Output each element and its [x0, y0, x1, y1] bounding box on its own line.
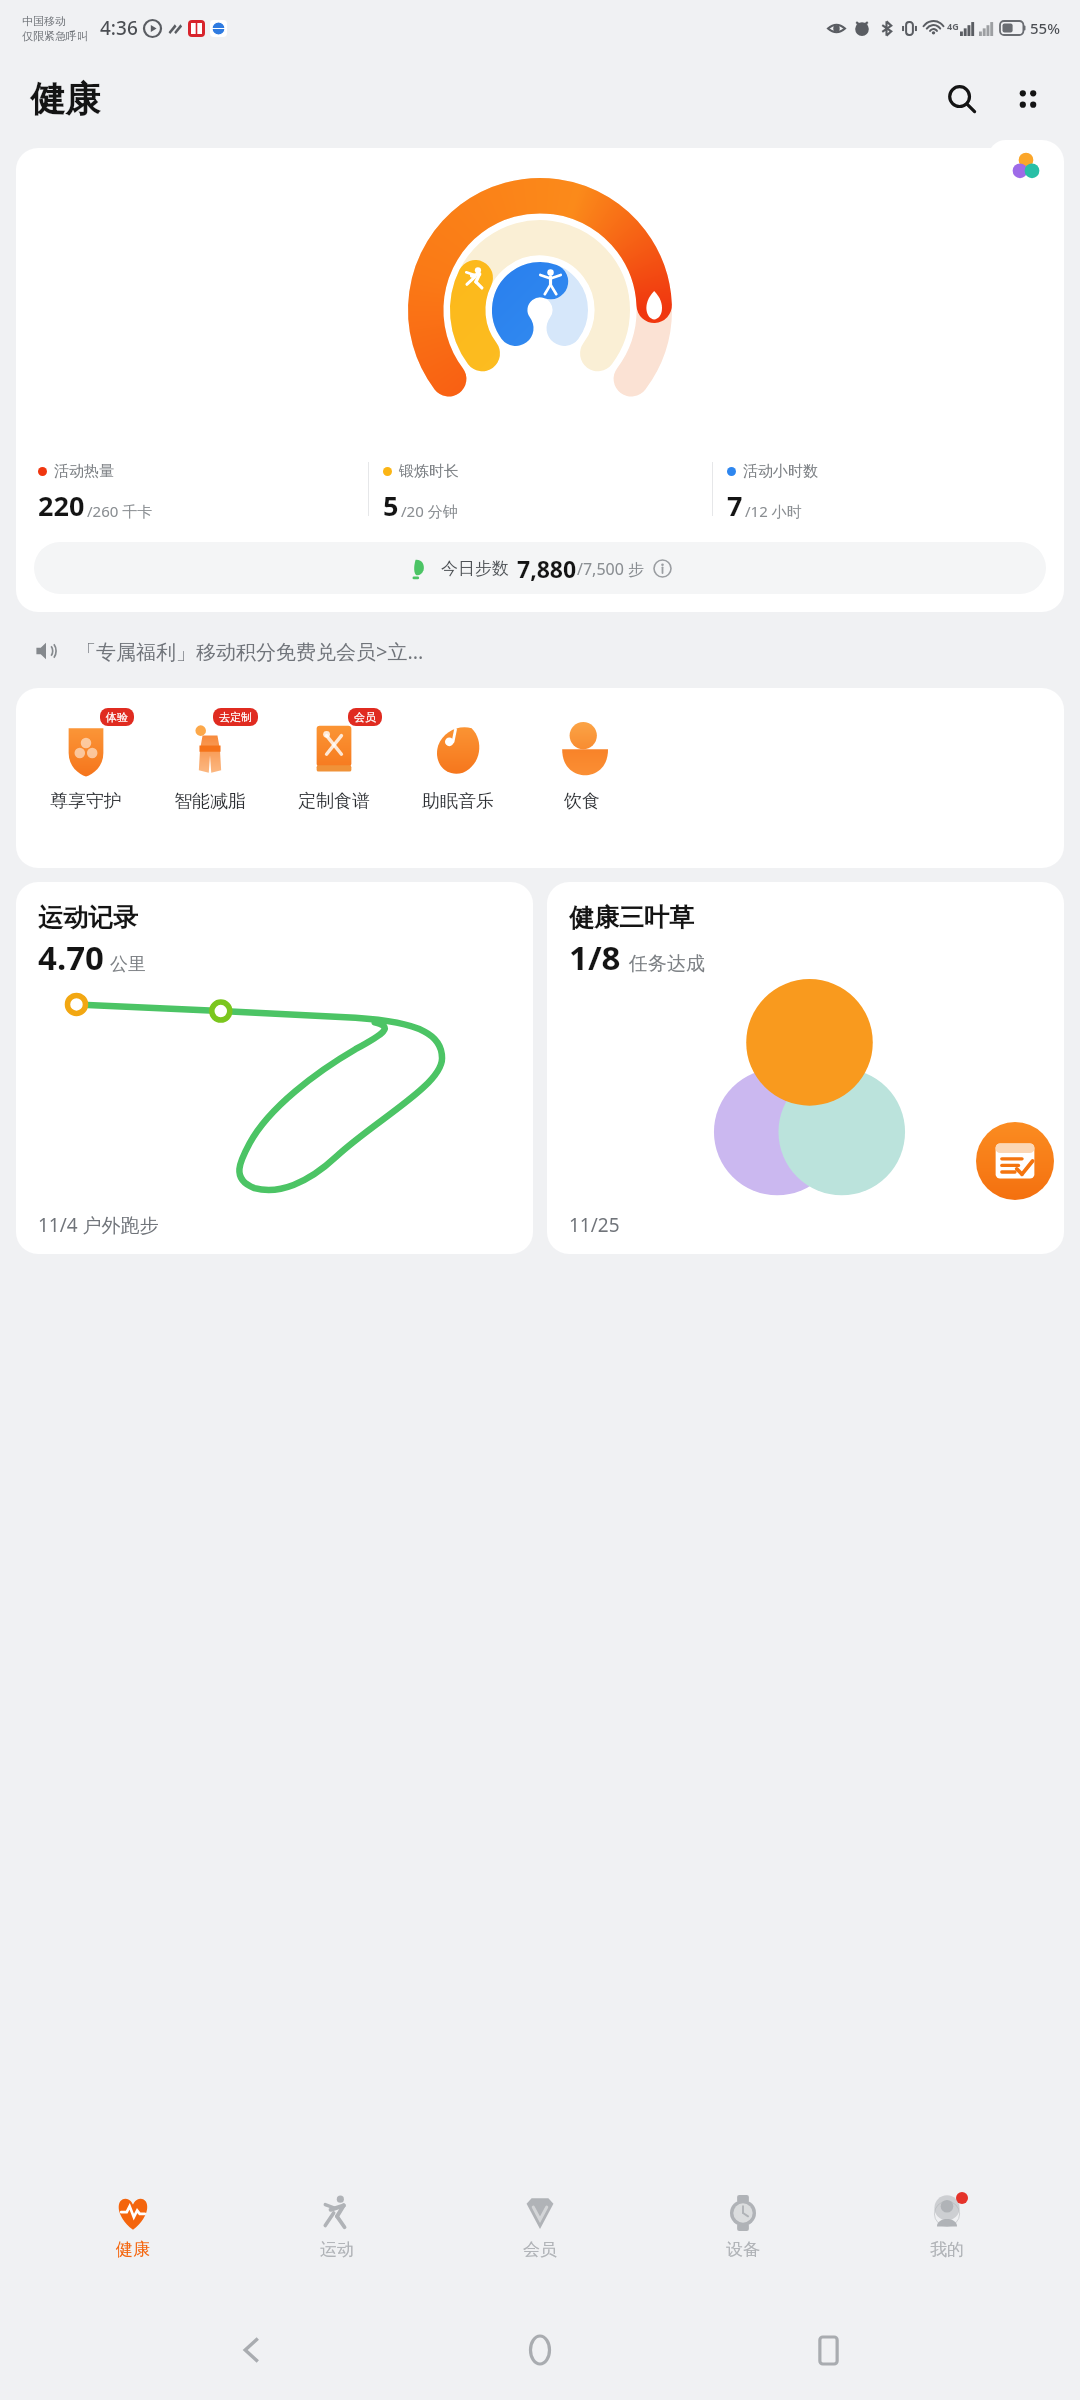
staticText: 5 [383, 487, 399, 524]
staticText: 体验 [106, 710, 128, 724]
button[interactable]: Back [218, 2315, 288, 2385]
staticText: 中国移动 [22, 14, 66, 28]
button[interactable]: 我的 [877, 2190, 1017, 2260]
staticText: 仅限紧急呼叫 [22, 29, 88, 43]
button[interactable]: Recents [793, 2315, 863, 2385]
staticText: 220 [38, 487, 85, 524]
button[interactable]: 助眠音乐 [410, 710, 506, 813]
staticText: 我的 [930, 2239, 964, 2260]
button[interactable]: 体验 [38, 710, 134, 813]
staticText: 4.70 [38, 935, 104, 980]
staticText: 助眠音乐 [422, 790, 494, 813]
button[interactable]: 设备 [673, 2190, 813, 2260]
button[interactable]: Health clover [988, 140, 1064, 192]
staticText: /20 分钟 [401, 501, 458, 521]
staticText: 7 [727, 487, 743, 524]
staticText: 会员 [523, 2239, 557, 2260]
staticText: 1/8 [569, 935, 621, 980]
button[interactable]: 运动 [267, 2190, 407, 2260]
staticText: 运动记录 [38, 902, 138, 933]
staticText: 活动小时数 [743, 462, 818, 481]
staticText: 健康 [116, 2239, 150, 2260]
button[interactable]: 「专属福利」移动积分免费兑会员>立… [0, 626, 1080, 676]
staticText: /12 小时 [745, 501, 802, 521]
staticText: /260 千卡 [87, 501, 153, 521]
staticText: 健康三叶草 [569, 902, 694, 933]
staticText: 智能减脂 [174, 790, 246, 813]
button[interactable]: 健康三叶草 [547, 882, 1064, 1254]
button[interactable]: 活动热量 [16, 148, 1064, 612]
staticText: 55% [1030, 18, 1060, 38]
button[interactable]: 去定制 [162, 710, 258, 813]
button[interactable]: More options [1002, 73, 1054, 125]
staticText: 定制食谱 [298, 790, 370, 813]
button[interactable]: 饮食 [534, 710, 630, 813]
staticText: 活动热量 [54, 462, 114, 481]
button[interactable]: 会员 [286, 710, 382, 813]
staticText: 饮食 [564, 790, 600, 813]
staticText: 去定制 [219, 710, 252, 724]
staticText: 7,880 [517, 553, 577, 584]
staticText: 「专属福利」移动积分免费兑会员>立… [76, 638, 424, 665]
staticText: /7,500 步 [577, 558, 645, 580]
staticText: 今日步数 [441, 558, 509, 579]
button[interactable]: 健康 [63, 2190, 203, 2260]
staticText: 任务达成 [629, 952, 705, 976]
staticText: 11/25 [569, 1212, 620, 1238]
staticText: 设备 [726, 2239, 760, 2260]
staticText: 4G [947, 20, 959, 32]
staticText: 尊享守护 [50, 790, 122, 813]
button[interactable]: 会员 [470, 2190, 610, 2260]
staticText: 4:36 [100, 15, 138, 41]
button[interactable]: Home [505, 2315, 575, 2385]
staticText: 会员 [354, 710, 376, 724]
button[interactable]: 今日步数 [34, 542, 1046, 594]
staticText: 健康 [30, 77, 100, 121]
staticText: 11/4 户外跑步 [38, 1212, 159, 1238]
staticText: 公里 [110, 953, 146, 976]
button[interactable]: Search [936, 73, 988, 125]
button[interactable]: 运动记录 [16, 882, 533, 1254]
staticText: 锻炼时长 [399, 462, 459, 481]
staticText: 运动 [320, 2239, 354, 2260]
